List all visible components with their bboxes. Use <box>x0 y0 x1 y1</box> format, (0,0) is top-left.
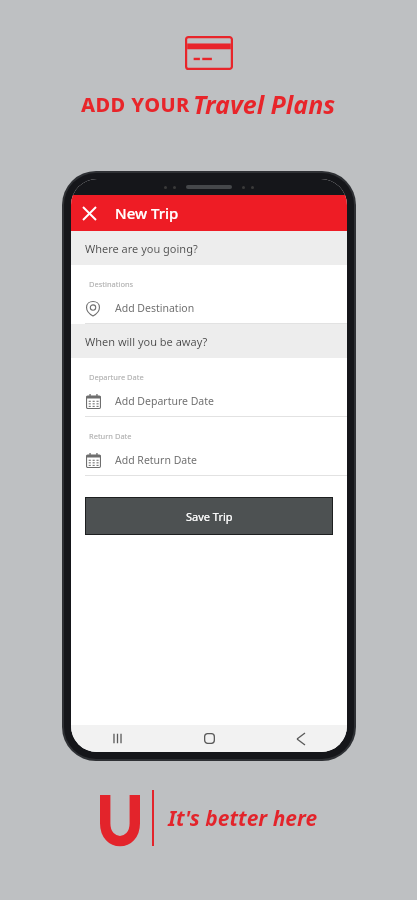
button[interactable]: Save Trip <box>85 497 333 535</box>
button[interactable]: Add Destination <box>71 293 347 323</box>
staticText: Departure Date <box>89 372 144 382</box>
button[interactable]: Recent apps <box>97 725 137 752</box>
staticText: New Trip <box>115 203 179 223</box>
staticText: It's better here <box>168 804 318 833</box>
staticText: Add Departure Date <box>115 394 214 408</box>
button[interactable]: Back <box>281 725 321 752</box>
staticText: Return Date <box>89 431 132 441</box>
button[interactable]: Home <box>189 725 229 752</box>
staticText: Travel Plans <box>193 87 336 121</box>
staticText: Where are you going? <box>85 241 198 256</box>
staticText: Save Trip <box>186 509 233 524</box>
staticText: When will you be away? <box>85 334 208 349</box>
staticText: Add Destination <box>115 301 195 315</box>
staticText: Destinations <box>89 279 134 289</box>
button[interactable]: Add Return Date <box>71 445 347 475</box>
staticText: Add Return Date <box>115 453 197 467</box>
staticText: ADD YOUR <box>81 91 190 118</box>
button[interactable]: Add Departure Date <box>71 386 347 416</box>
button[interactable]: Close <box>71 195 107 231</box>
